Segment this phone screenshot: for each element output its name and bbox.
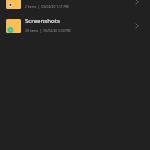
staticText: 30 items | 05/02/20 3:34 PM [25, 28, 71, 32]
other: Open folder [130, 19, 144, 33]
staticText: Screenshots [25, 16, 60, 24]
other: Open folder [130, 0, 144, 9]
staticText: 2 items | 05/02/20 1:11 PM [25, 4, 69, 8]
button[interactable]: Screenshots [0, 14, 150, 38]
button[interactable]: Pictures [0, 0, 150, 14]
